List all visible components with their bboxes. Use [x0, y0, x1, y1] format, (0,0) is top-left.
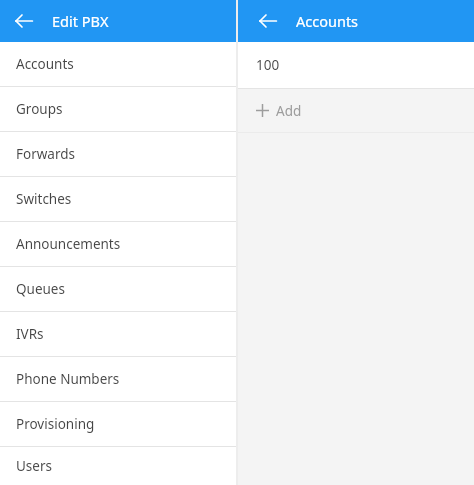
- staticText: Switches: [16, 190, 72, 208]
- button[interactable]: Accounts: [0, 42, 236, 86]
- button[interactable]: Groups: [0, 87, 236, 131]
- button[interactable]: Back: [254, 7, 282, 35]
- button[interactable]: Announcements: [0, 222, 236, 266]
- staticText: 100: [256, 56, 280, 74]
- staticText: Provisioning: [16, 415, 95, 433]
- button[interactable]: Back: [10, 7, 38, 35]
- staticText: Users: [16, 457, 52, 475]
- staticText: Edit PBX: [52, 11, 109, 31]
- button[interactable]: Provisioning: [0, 402, 236, 446]
- staticText: Forwards: [16, 145, 76, 163]
- staticText: Queues: [16, 280, 65, 298]
- button[interactable]: Phone Numbers: [0, 357, 236, 401]
- button[interactable]: 100: [238, 42, 474, 88]
- button[interactable]: Switches: [0, 177, 236, 221]
- staticText: Phone Numbers: [16, 370, 120, 388]
- button[interactable]: Add: [238, 89, 474, 132]
- staticText: Accounts: [296, 11, 359, 31]
- button[interactable]: Users: [0, 447, 236, 485]
- staticText: Announcements: [16, 235, 121, 253]
- button[interactable]: Forwards: [0, 132, 236, 176]
- staticText: Groups: [16, 100, 63, 118]
- staticText: IVRs: [16, 325, 44, 343]
- staticText: Accounts: [16, 55, 74, 73]
- button[interactable]: Queues: [0, 267, 236, 311]
- staticText: Add: [276, 102, 302, 120]
- button[interactable]: IVRs: [0, 312, 236, 356]
